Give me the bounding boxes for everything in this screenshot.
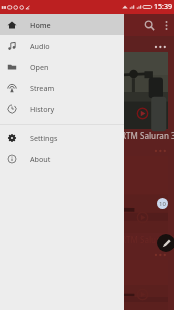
staticText: 10 xyxy=(159,200,166,208)
button[interactable]: Home xyxy=(0,14,124,35)
staticText: Stream xyxy=(30,83,55,93)
button[interactable]: Play xyxy=(136,107,149,120)
button[interactable]: More options xyxy=(159,18,173,32)
button[interactable]: Card options xyxy=(0,250,168,310)
button[interactable]: Settings xyxy=(0,127,124,148)
button[interactable]: Card options xyxy=(154,42,168,52)
staticText: History xyxy=(30,104,55,114)
staticText: Settings xyxy=(30,133,58,143)
staticText: Audio xyxy=(30,41,50,51)
staticText: About xyxy=(30,154,51,164)
button[interactable]: Open xyxy=(0,56,124,77)
staticText: Open xyxy=(30,62,49,72)
button[interactable]: Play xyxy=(136,288,149,301)
staticText: RTM Saluran 3 xyxy=(121,130,174,141)
button[interactable]: Card options xyxy=(154,250,168,260)
button[interactable]: Stream xyxy=(0,77,124,98)
button[interactable]: Search xyxy=(139,15,159,35)
button[interactable]: Card options xyxy=(0,146,168,246)
button[interactable]: Notifications: 10 xyxy=(157,198,168,209)
button[interactable]: About xyxy=(0,148,124,169)
button[interactable]: Card options xyxy=(0,42,168,142)
staticText: Home xyxy=(30,20,51,30)
button[interactable]: Card options xyxy=(154,146,168,156)
button[interactable]: Audio xyxy=(0,35,124,56)
button[interactable]: Play xyxy=(136,211,149,224)
button[interactable]: Edit xyxy=(157,234,174,252)
staticText: RTM Saluran 3 xyxy=(121,234,174,245)
staticText: 15:39 xyxy=(154,2,172,12)
button[interactable]: History xyxy=(0,98,124,119)
